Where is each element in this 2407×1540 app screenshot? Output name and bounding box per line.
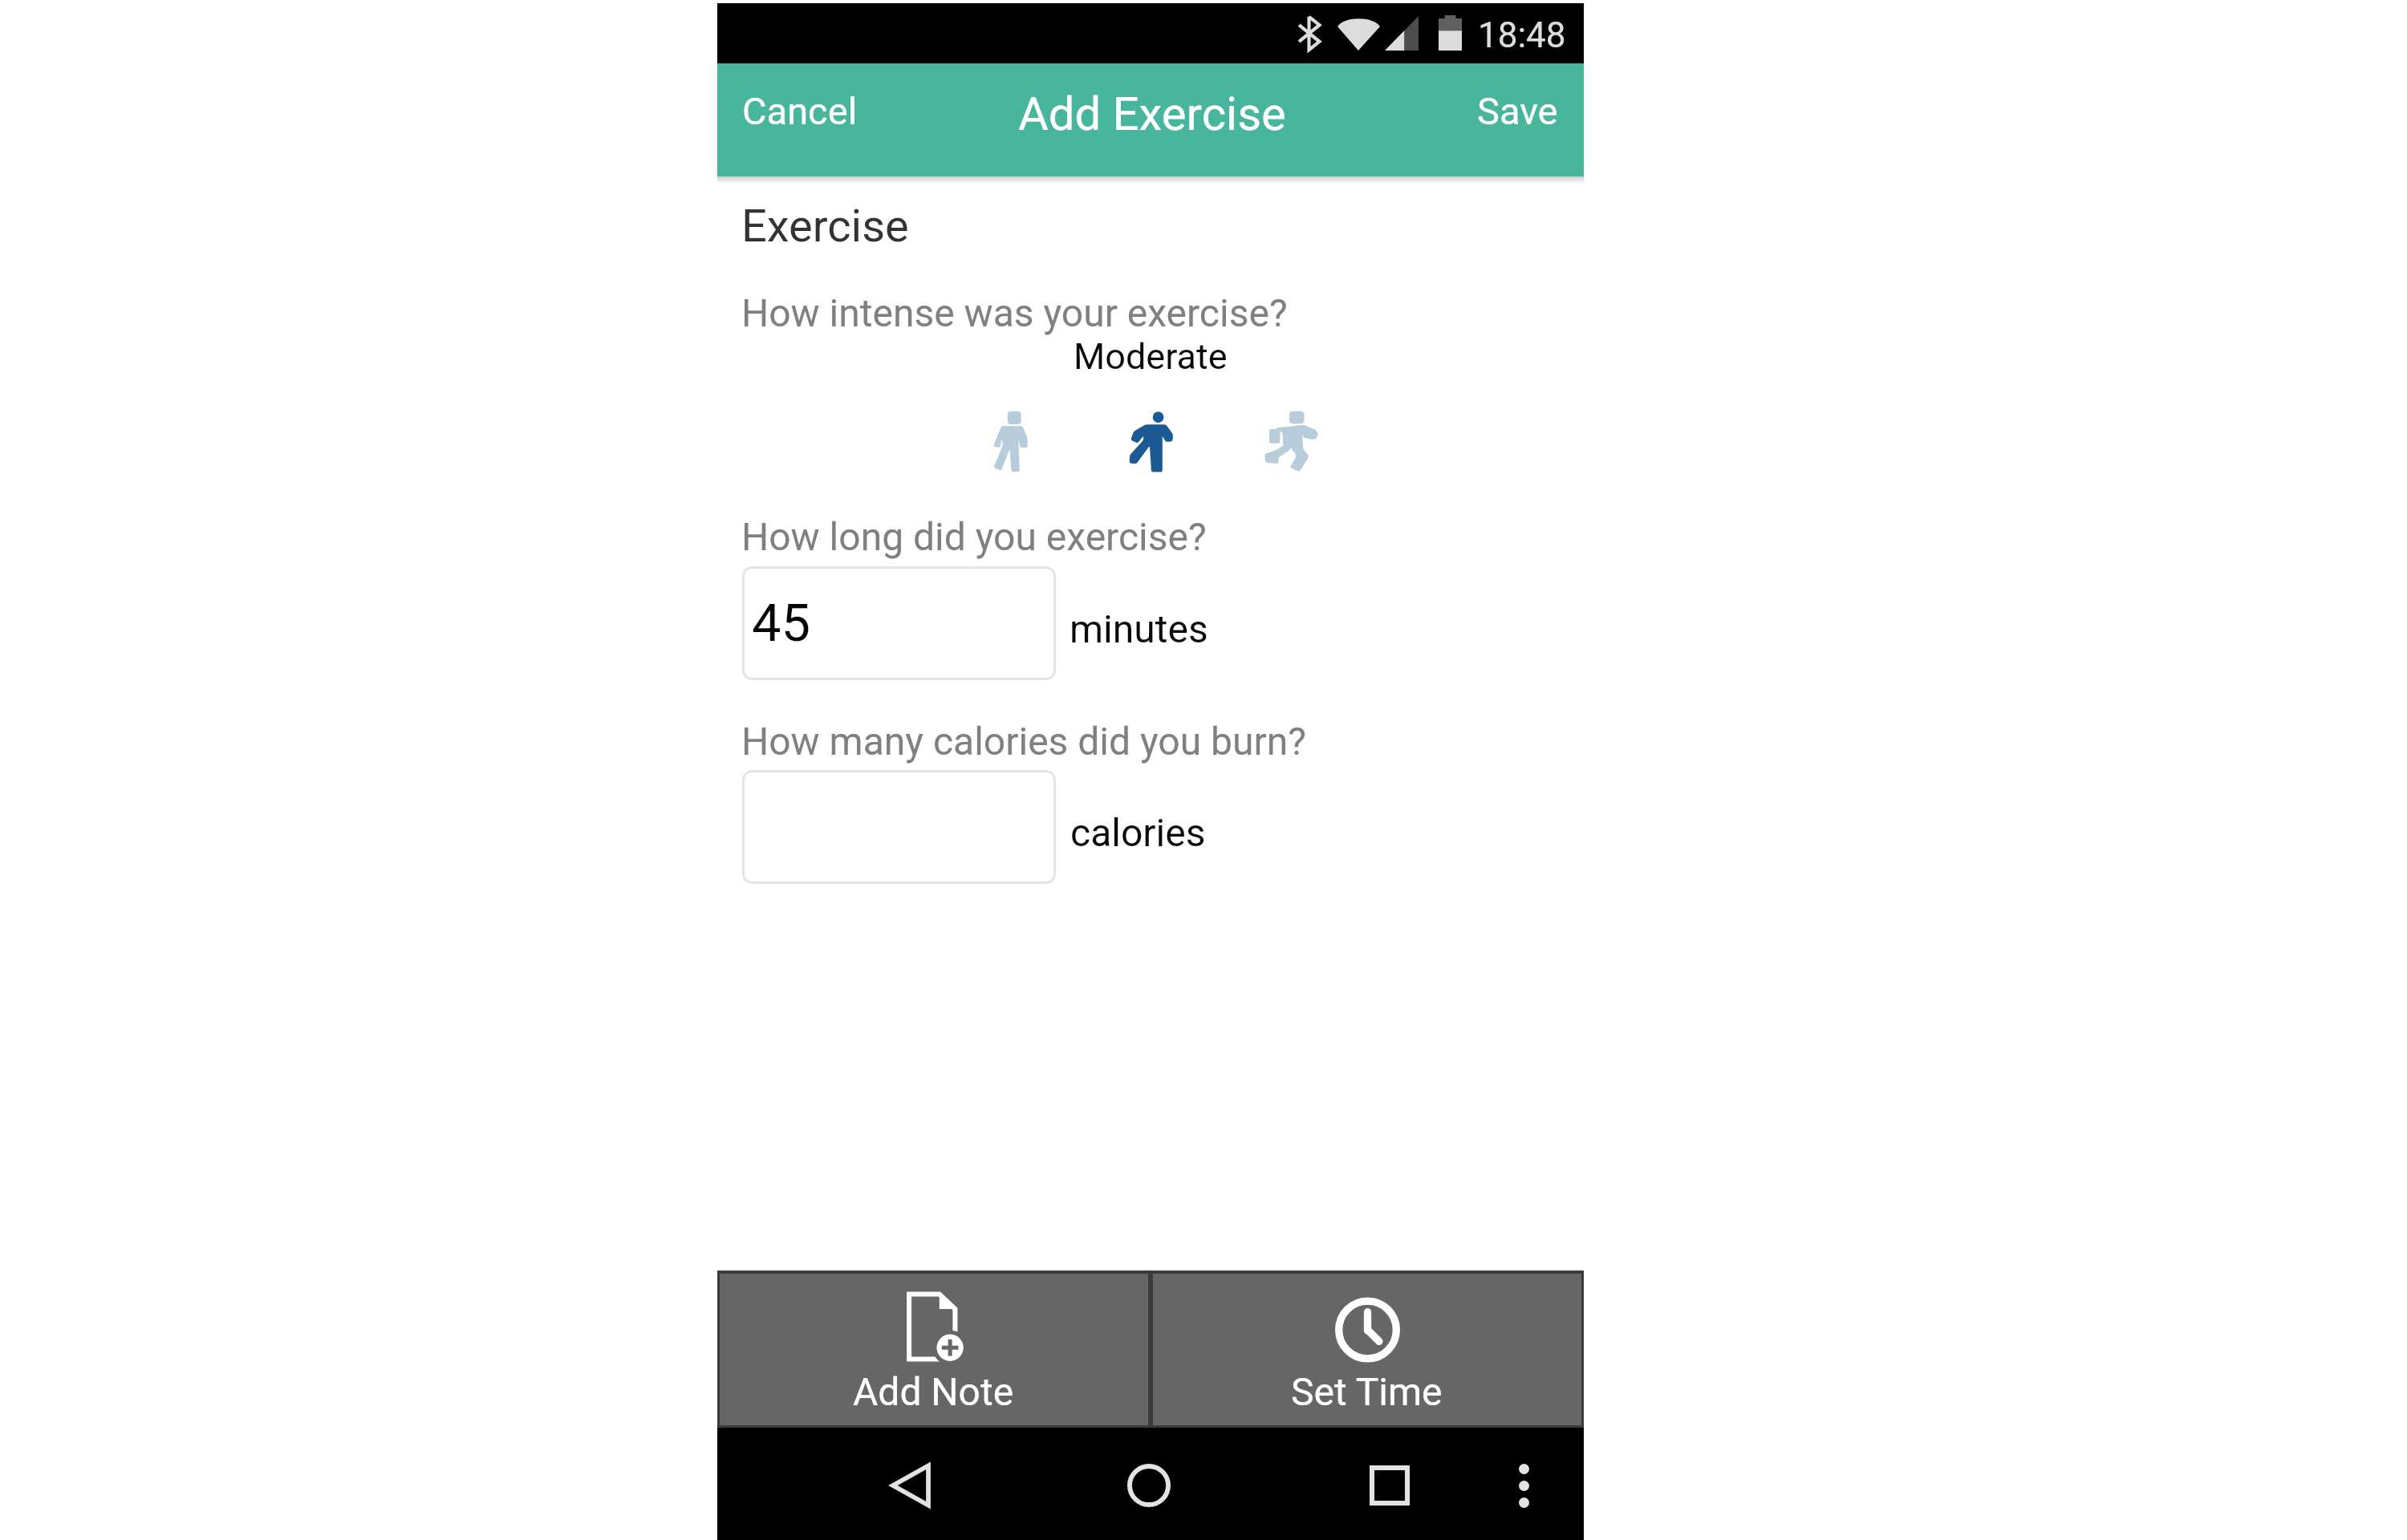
button[interactable] [742,566,1056,680]
staticText: Moderate [1074,335,1228,378]
staticText: How intense was your exercise? [741,290,1288,335]
button[interactable]: Add Note [720,1274,1148,1425]
staticText: How many calories did you burn? [741,719,1306,764]
button[interactable] [742,770,1056,884]
staticText: How long did you exercise? [741,514,1207,559]
button[interactable]: More options [1495,1440,1553,1532]
button[interactable]: Home [1103,1440,1195,1531]
staticText: Add Exercise [1018,87,1286,141]
button[interactable]: Save [1449,63,1584,176]
staticText: calories [1070,810,1206,855]
staticText: Exercise [741,200,909,253]
button[interactable]: Back [867,1439,955,1532]
staticText: Cancel [742,89,858,133]
staticText: minutes [1070,606,1208,651]
staticText: Set Time [1291,1369,1443,1414]
button[interactable]: Recents [1346,1441,1434,1530]
staticText: 18:48 [1478,14,1566,56]
button[interactable]: Light intensity [971,390,1050,493]
staticText: 45 [752,593,811,654]
button[interactable]: Cancel [717,63,878,176]
button[interactable]: Set Time [1153,1274,1581,1425]
staticText: Add Note [853,1369,1014,1414]
button[interactable]: Vigorous intensity [1244,390,1339,493]
staticText: Save [1477,89,1558,133]
button[interactable]: Moderate intensity [1108,390,1194,494]
